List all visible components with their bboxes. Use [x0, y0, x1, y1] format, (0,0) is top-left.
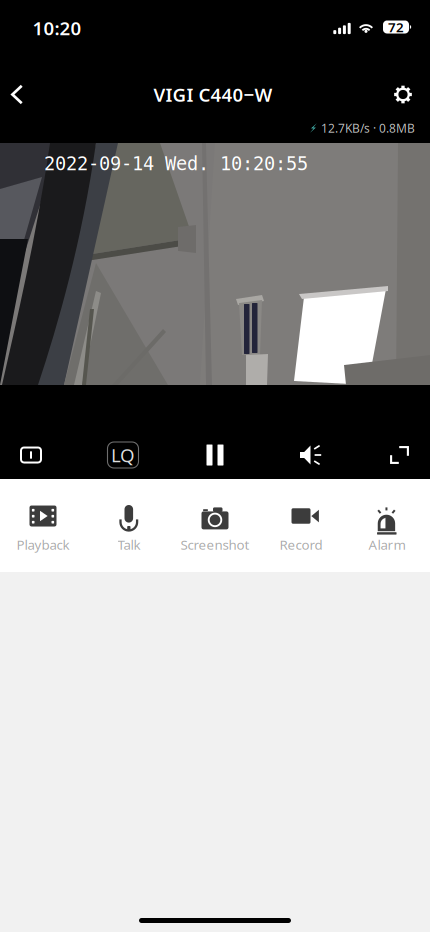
button[interactable]: Back	[0, 72, 40, 116]
button[interactable]: Settings	[380, 72, 426, 116]
button[interactable]: Split view	[0, 429, 62, 481]
staticText: Alarm	[368, 536, 405, 553]
staticText: Talk	[117, 536, 140, 553]
staticText: LQ	[111, 443, 135, 467]
staticText: 12.7KB/s · 0.8MB	[321, 120, 415, 136]
button[interactable]: Mute	[280, 429, 342, 481]
staticText: Record	[279, 536, 322, 553]
staticText: 2022-09-14 Wed. 10:20:55	[44, 153, 308, 175]
button[interactable]: Playback	[0, 479, 86, 572]
button[interactable]: Talk	[86, 479, 172, 572]
button[interactable]: Screenshot	[172, 479, 258, 572]
staticText: 72	[388, 18, 404, 36]
staticText: Playback	[16, 536, 69, 553]
button[interactable]: Pause	[184, 429, 246, 481]
button[interactable]: Alarm	[344, 479, 430, 572]
staticText: 10:20	[32, 16, 81, 40]
staticText: VIGI C440−W	[153, 82, 272, 107]
button[interactable]: Full screen	[368, 429, 430, 481]
button[interactable]: Record	[258, 479, 344, 572]
staticText: Screenshot	[180, 536, 249, 553]
button[interactable]: Stream quality	[92, 429, 154, 481]
